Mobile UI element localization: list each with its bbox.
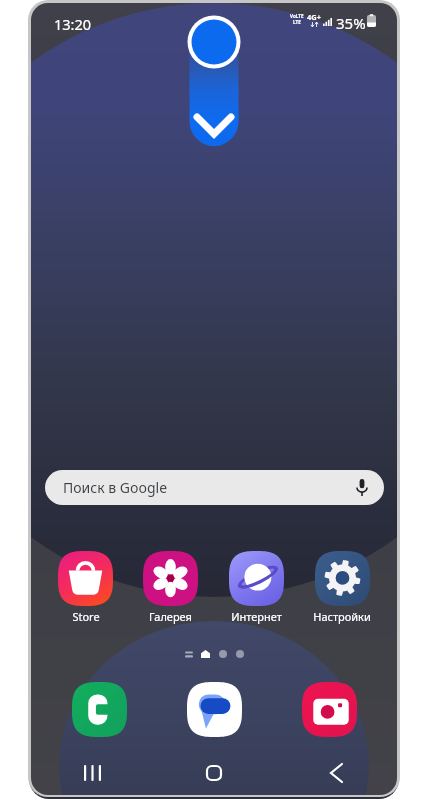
staticText: Галерея [149,609,192,624]
button[interactable]: Store [43,551,128,624]
button[interactable]: Интернет [213,551,299,624]
staticText: VoLTE [290,13,304,19]
staticText: Интернет [231,609,282,624]
button[interactable]: Поиск в Google [45,470,384,505]
button[interactable]: Camera [302,682,357,737]
staticText: LTE [293,19,301,25]
button[interactable]: Recents [31,753,153,793]
button[interactable]: Phone [72,682,127,737]
staticText: Store [72,609,100,624]
button[interactable]: Настройки [299,551,385,624]
button[interactable]: Галерея [128,551,213,624]
staticText: 13:20 [54,14,92,34]
button[interactable]: Home [153,753,275,793]
button[interactable]: Messages [187,682,242,737]
button[interactable]: Page indicator [31,647,397,661]
staticText: Поиск в Google [63,478,168,497]
staticText: 4G+ [307,12,322,22]
staticText: Настройки [313,609,371,624]
button[interactable]: Back [275,753,397,793]
staticText: 35% [336,13,366,33]
